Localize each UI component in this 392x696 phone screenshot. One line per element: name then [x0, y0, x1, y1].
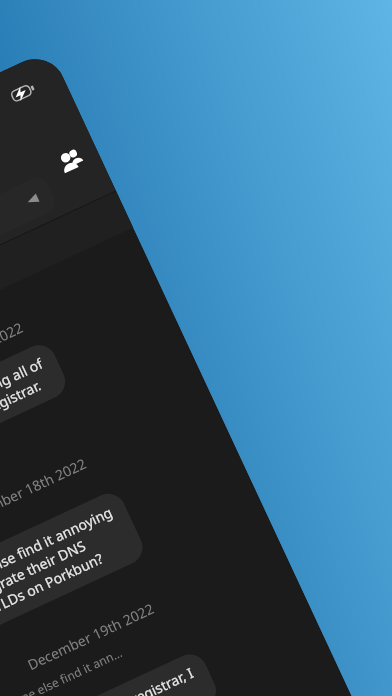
staticText: December 16th 2022 [0, 318, 26, 393]
button[interactable]: Finally got round to moving all of my do… [0, 339, 71, 494]
staticText: Not to mention the registrar, I have to … [11, 663, 204, 696]
staticText: Finally got round to moving all of my do… [0, 354, 54, 480]
staticText: December 18th 2022 [0, 454, 89, 529]
staticText: Does anyone else find it annoying having… [0, 502, 131, 648]
button[interactable]: Does anyone else find it annoying having… [0, 488, 149, 662]
staticText: December 19th 2022 [23, 599, 157, 674]
staticText: Does anyone else find it ann… [0, 644, 125, 696]
button[interactable] [0, 174, 59, 305]
button[interactable]: Not to mention the registrar, I have to … [0, 648, 222, 696]
button[interactable]: Members [47, 137, 94, 183]
